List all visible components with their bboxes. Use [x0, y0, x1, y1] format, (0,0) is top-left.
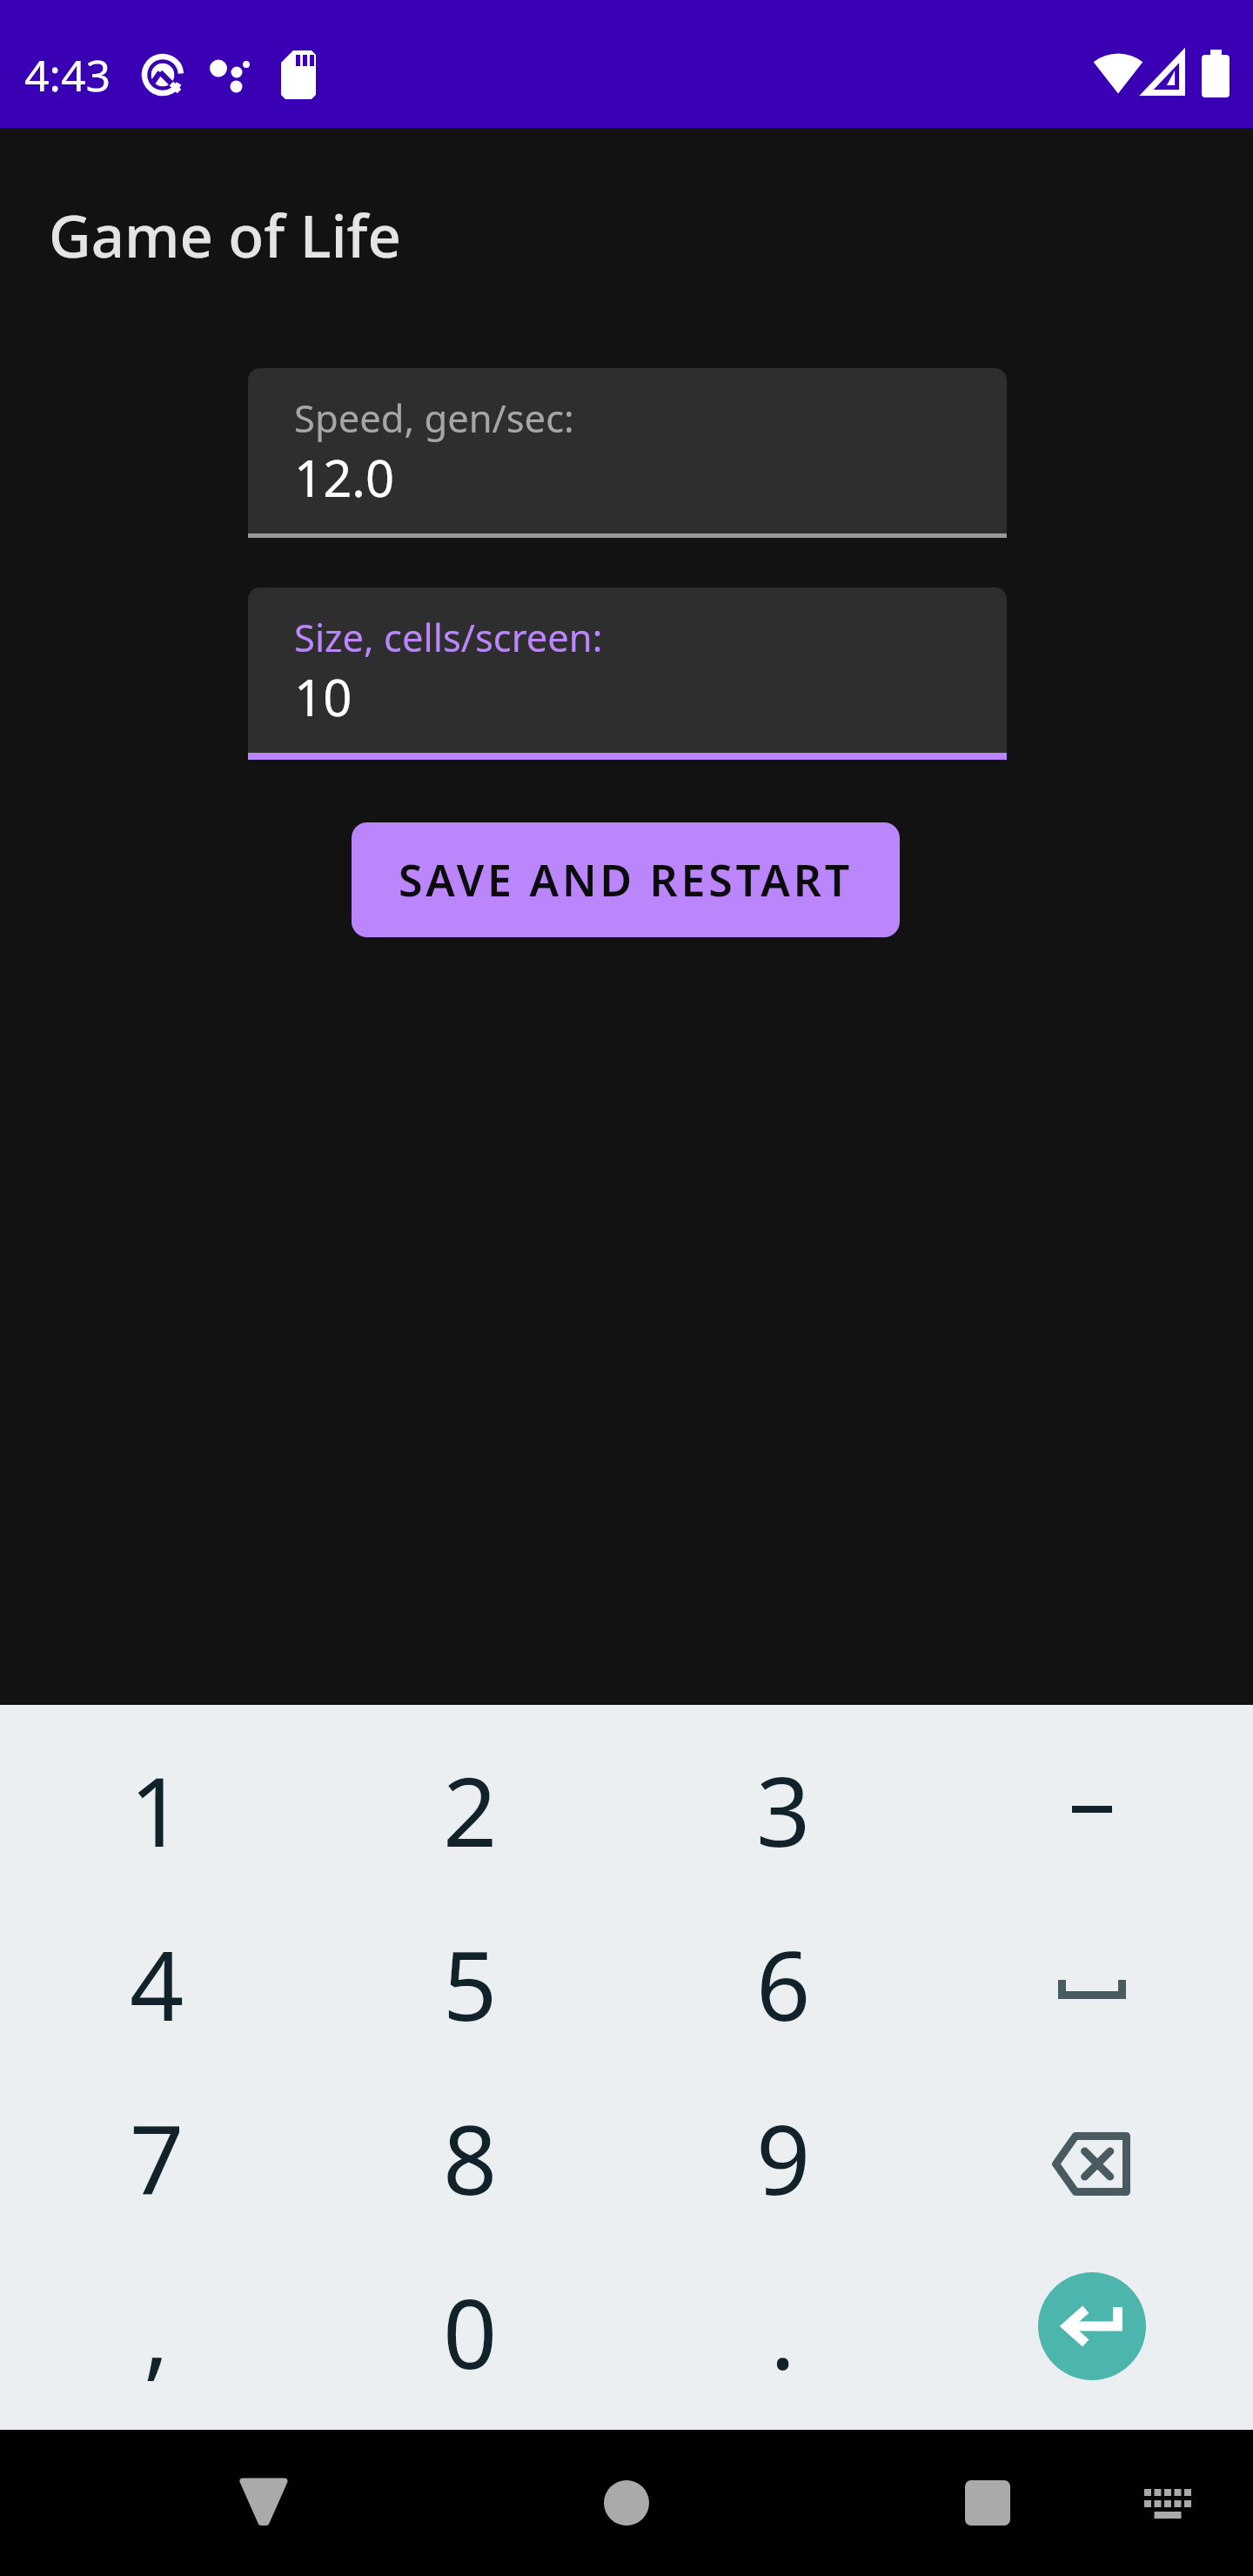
staticText: 10 [294, 662, 352, 731]
button[interactable]: Enter [1038, 2272, 1146, 2380]
button[interactable]: 4 [0, 1896, 313, 2070]
button[interactable]: 5 [313, 1896, 626, 2070]
staticText: 2 [443, 1745, 498, 1874]
staticText: 6 [756, 1919, 811, 2048]
button[interactable]: 8 [313, 2070, 626, 2244]
staticText: SAVE AND RESTART [399, 850, 853, 909]
staticText: 9 [756, 2093, 811, 2222]
other: Delete [1052, 2132, 1130, 2196]
button[interactable]: 1 [0, 1722, 313, 1896]
button[interactable]: Speed, gen/sec: [248, 368, 1007, 538]
button[interactable]: Space [940, 1896, 1253, 2070]
button[interactable]: Home [561, 2438, 692, 2568]
button[interactable]: 3 [626, 1722, 940, 1896]
button[interactable]: 7 [0, 2070, 313, 2244]
staticText: 8 [443, 2093, 498, 2222]
other: Minus [1072, 1789, 1112, 1829]
staticText: 4:43 [24, 45, 111, 104]
button[interactable]: SAVE AND RESTART [352, 822, 900, 937]
staticText: . [770, 2267, 796, 2396]
staticText: 4 [130, 1919, 184, 2048]
button[interactable]: Delete [940, 2070, 1253, 2244]
button[interactable]: Size, cells/screen: [248, 587, 1007, 760]
button[interactable]: 9 [626, 2070, 940, 2244]
button[interactable]: . [626, 2244, 940, 2418]
staticText: 5 [443, 1919, 498, 2048]
staticText: 7 [130, 2093, 184, 2222]
button[interactable]: Minus [940, 1722, 1253, 1896]
staticText: Size, cells/screen: [294, 611, 603, 662]
staticText: Game of Life [49, 195, 401, 274]
button[interactable]: 0 [313, 2244, 626, 2418]
button[interactable]: , [0, 2244, 313, 2418]
button[interactable]: Recents [922, 2438, 1053, 2568]
staticText: 12.0 [294, 443, 395, 512]
button[interactable]: 6 [626, 1896, 940, 2070]
button[interactable]: Switch keyboard [1102, 2438, 1233, 2568]
staticText: , [144, 2267, 170, 2396]
other: Space [1058, 1980, 1126, 1999]
button[interactable]: 2 [313, 1722, 626, 1896]
staticText: 3 [756, 1745, 811, 1874]
staticText: 0 [443, 2267, 498, 2396]
button[interactable]: Enter [940, 2244, 1253, 2418]
staticText: Speed, gen/sec: [294, 392, 574, 443]
staticText: 1 [130, 1745, 184, 1874]
button[interactable]: Back [198, 2438, 329, 2568]
